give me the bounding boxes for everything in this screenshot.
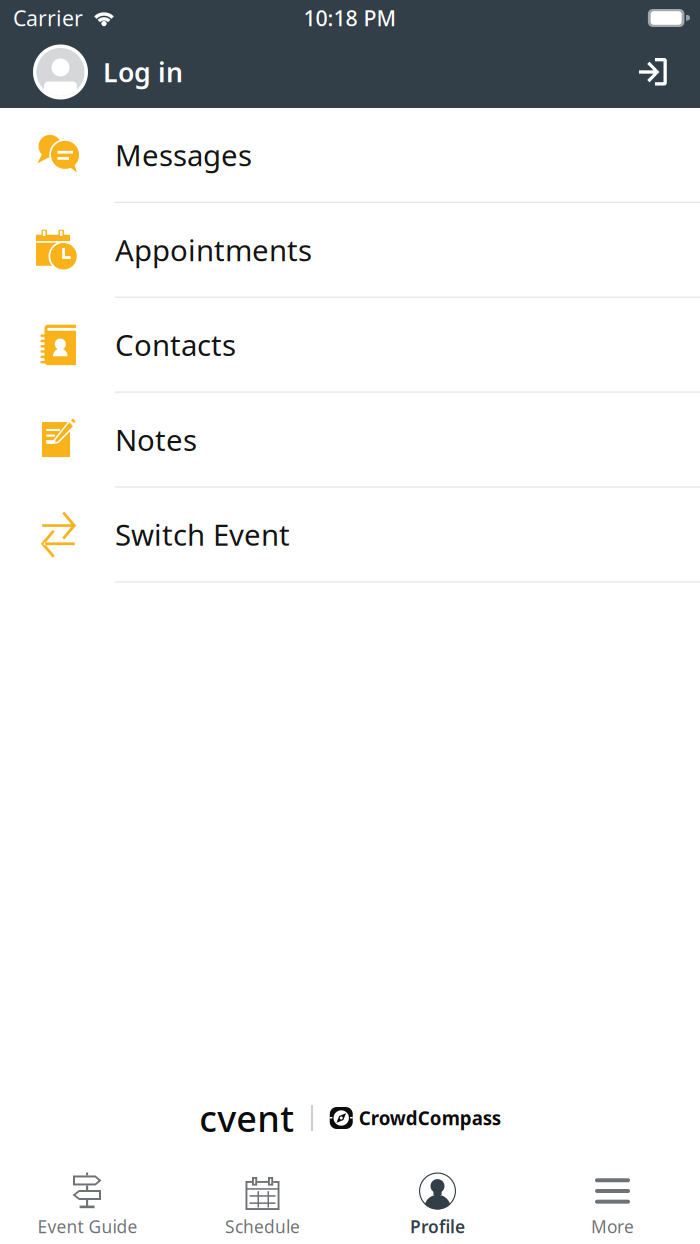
staticText: Appointments xyxy=(115,230,312,269)
button[interactable]: Switch Event xyxy=(0,488,700,582)
button[interactable]: Notes xyxy=(0,393,700,488)
button[interactable]: Log in xyxy=(619,42,700,102)
button[interactable]: More xyxy=(525,1160,700,1244)
staticText: CrowdCompass xyxy=(359,1106,501,1130)
button[interactable]: Event Guide xyxy=(0,1160,175,1244)
button[interactable]: Messages xyxy=(0,108,700,203)
staticText: Log in xyxy=(103,54,183,90)
staticText: cvent xyxy=(199,1094,294,1142)
button[interactable]: Contacts xyxy=(0,298,700,393)
button[interactable]: Log in xyxy=(0,36,183,107)
staticText: Profile xyxy=(410,1215,465,1238)
button[interactable]: Schedule xyxy=(175,1160,350,1244)
staticText: Carrier xyxy=(13,4,83,32)
staticText: Schedule xyxy=(225,1215,300,1238)
staticText: Contacts xyxy=(115,325,236,364)
button[interactable]: Profile xyxy=(350,1160,525,1244)
staticText: Messages xyxy=(115,135,252,174)
staticText: Switch Event xyxy=(115,515,290,554)
staticText: Event Guide xyxy=(37,1215,137,1238)
staticText: More xyxy=(591,1215,634,1238)
button[interactable]: Appointments xyxy=(0,203,700,298)
staticText: Notes xyxy=(115,420,197,459)
staticText: 10:18 PM xyxy=(303,4,396,32)
